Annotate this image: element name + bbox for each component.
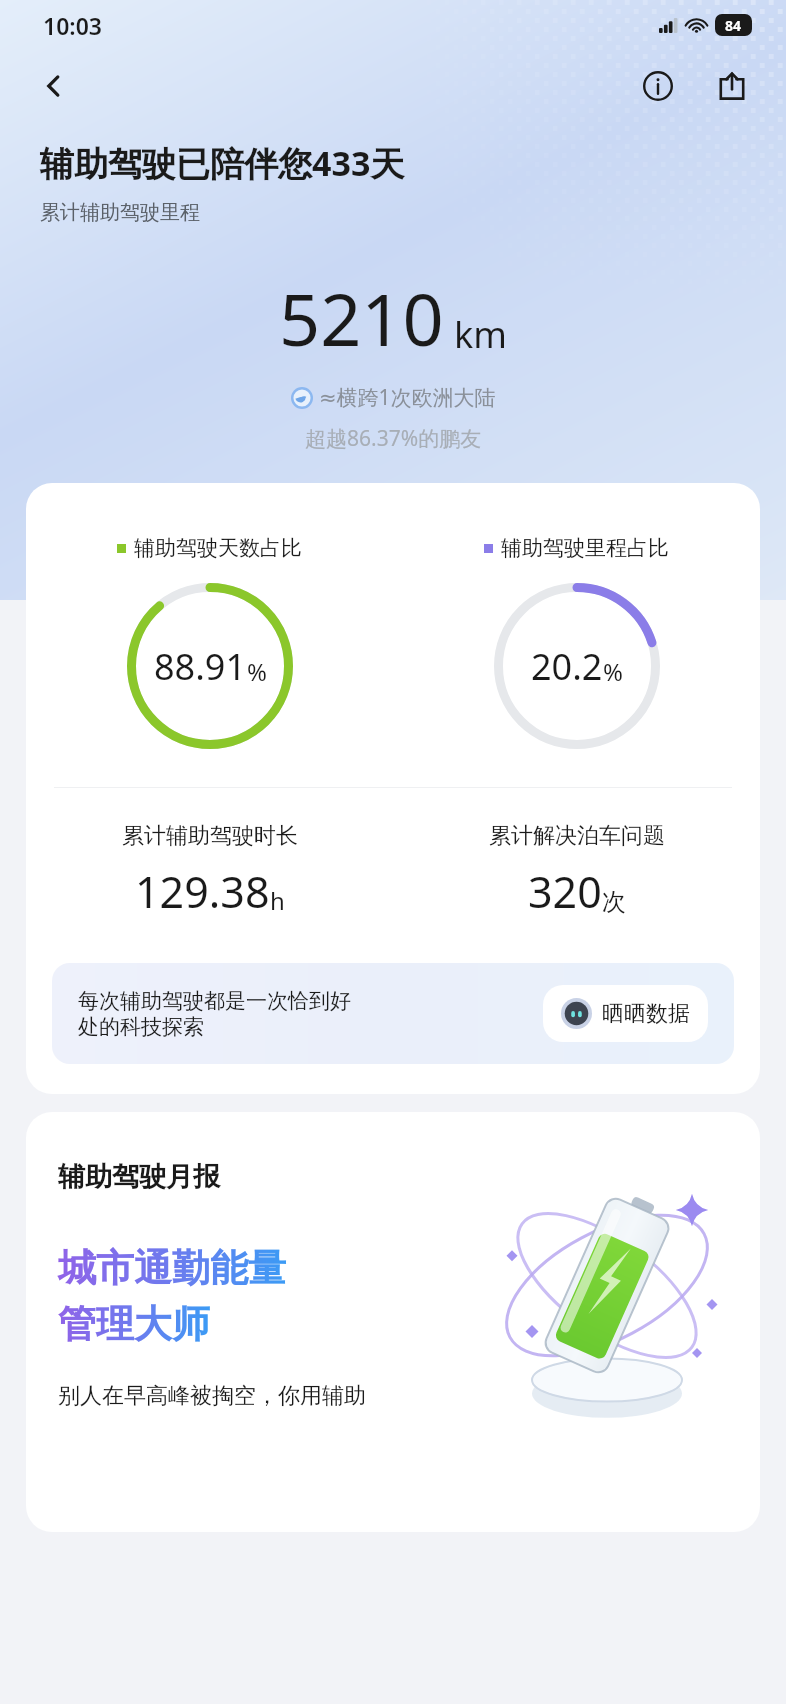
staticText: km xyxy=(454,310,507,359)
staticText: 320 xyxy=(528,862,602,921)
button[interactable]: 晒晒数据 xyxy=(543,985,708,1042)
staticText: 超越86.37%的鹏友 xyxy=(305,424,482,453)
staticText: 129.38 xyxy=(135,862,270,921)
staticText: 别人在早高峰被掏空，你用辅助 xyxy=(58,1382,366,1410)
staticText: 处的科技探索 xyxy=(78,1014,204,1040)
button[interactable]: Share xyxy=(708,62,756,110)
staticText: 辅助驾驶里程占比 xyxy=(501,535,669,561)
staticText: 10:03 xyxy=(43,10,102,41)
staticText: 累计解决泊车问题 xyxy=(489,822,665,850)
button[interactable]: Back xyxy=(30,62,78,110)
staticText: 辅助驾驶已陪伴您433天 xyxy=(40,140,405,186)
staticText: % xyxy=(247,655,267,688)
button[interactable]: 辅助驾驶月报 xyxy=(26,1112,760,1532)
staticText: 城市通勤能量 xyxy=(58,1244,286,1292)
staticText: 管理大师 xyxy=(58,1300,210,1348)
staticText: 每次辅助驾驶都是一次恰到好 xyxy=(78,988,351,1014)
staticText: 88.91 xyxy=(154,642,247,691)
staticText: % xyxy=(603,655,623,688)
staticText: 辅助驾驶月报 xyxy=(58,1160,220,1194)
button[interactable]: Info xyxy=(634,62,682,110)
staticText: h xyxy=(270,884,285,917)
staticText: ≈横跨1次欧洲大陆 xyxy=(319,383,496,412)
staticText: 累计辅助驾驶里程 xyxy=(40,200,200,225)
staticText: 20.2 xyxy=(531,642,603,691)
staticText: 晒晒数据 xyxy=(602,1000,690,1028)
staticText: 辅助驾驶天数占比 xyxy=(134,535,302,561)
staticText: 累计辅助驾驶时长 xyxy=(122,822,298,850)
staticText: 84 xyxy=(725,16,742,35)
staticText: 次 xyxy=(602,887,626,917)
staticText: 5210 xyxy=(279,269,444,367)
